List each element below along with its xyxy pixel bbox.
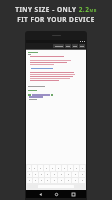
button[interactable]: Home — [53, 191, 59, 197]
staticText: FIT FOR YOUR DEVICE — [0, 15, 112, 24]
button[interactable]: Back — [37, 191, 43, 197]
button[interactable] — [65, 172, 71, 177]
button[interactable] — [44, 165, 49, 171]
button[interactable] — [58, 178, 64, 183]
button[interactable] — [72, 178, 78, 183]
button[interactable] — [80, 165, 85, 171]
button[interactable] — [56, 165, 61, 171]
button[interactable]: Menu — [79, 44, 85, 48]
button[interactable] — [27, 165, 31, 171]
button[interactable] — [51, 178, 57, 183]
button[interactable] — [65, 178, 71, 183]
staticText: TINY SIZE - ONLY 2.2MB — [0, 5, 112, 14]
button[interactable] — [72, 172, 78, 177]
button[interactable] — [45, 178, 50, 183]
button[interactable] — [32, 165, 37, 171]
button[interactable] — [38, 165, 43, 171]
button[interactable] — [33, 172, 38, 177]
button[interactable]: Open file — [53, 44, 64, 48]
button[interactable]: Open file — [25, 31, 87, 200]
button[interactable] — [51, 172, 57, 177]
button[interactable] — [79, 172, 85, 177]
button[interactable] — [50, 165, 55, 171]
button[interactable]: Recent apps — [70, 191, 76, 197]
button[interactable] — [74, 165, 79, 171]
button[interactable] — [39, 172, 44, 177]
button[interactable] — [39, 178, 44, 183]
button[interactable] — [68, 165, 73, 171]
button[interactable] — [62, 165, 67, 171]
button[interactable] — [33, 178, 38, 183]
button[interactable] — [45, 172, 50, 177]
button[interactable] — [27, 172, 32, 177]
button[interactable]: Run — [72, 44, 78, 48]
button[interactable]: Save — [65, 44, 71, 48]
button[interactable] — [79, 178, 85, 183]
button[interactable] — [58, 172, 64, 177]
button[interactable] — [27, 178, 32, 183]
